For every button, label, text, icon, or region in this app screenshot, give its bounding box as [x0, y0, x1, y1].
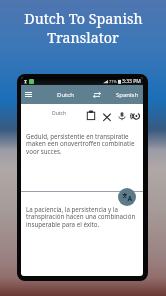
staticText: Dutch To Spanish [24, 9, 143, 28]
staticText: Dutch [52, 110, 67, 117]
staticText: 71% [109, 79, 117, 84]
staticText: Dutch [57, 91, 74, 99]
staticText: 3:33 PM [122, 78, 141, 85]
staticText: Translator [47, 28, 119, 47]
button[interactable]: Spanish [109, 85, 143, 104]
button[interactable]: Swap languages [90, 85, 104, 104]
button[interactable]: Clear [100, 104, 114, 123]
button[interactable]: Paste [84, 104, 98, 123]
button[interactable]: Speak [128, 104, 142, 123]
button[interactable]: Voice input [115, 104, 129, 123]
button[interactable]: Translate [118, 188, 136, 206]
button[interactable]: Dutch [52, 85, 78, 104]
button[interactable]: Menu [21, 85, 36, 104]
button[interactable]: Dutch [43, 104, 75, 123]
staticText: La paciencia, la persistencia y la trans… [26, 205, 138, 229]
staticText: Spanish [116, 91, 139, 99]
staticText: Geduld, persistentie en transpiratie mak… [26, 132, 138, 156]
